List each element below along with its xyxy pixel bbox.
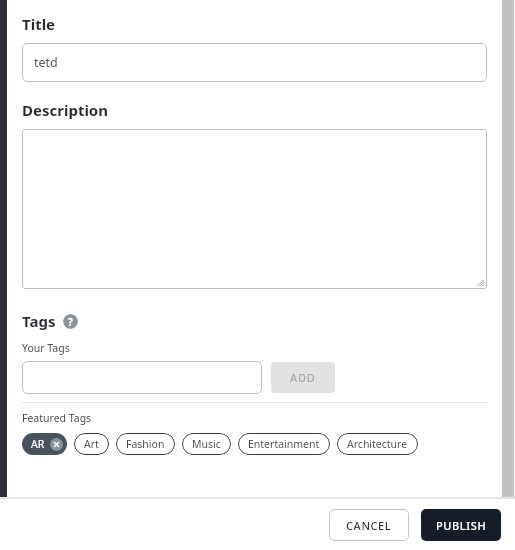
staticText: Music <box>192 437 221 451</box>
staticText: Fashion <box>126 437 165 451</box>
button[interactable]: CANCEL <box>329 509 409 541</box>
staticText: Description <box>22 100 108 120</box>
button[interactable]: tetd <box>22 43 487 82</box>
button[interactable]: Entertainment <box>238 433 330 455</box>
staticText: Architecture <box>347 437 408 451</box>
staticText: AR <box>31 437 45 451</box>
staticText: ADD <box>290 370 316 385</box>
staticText: ? <box>68 315 73 329</box>
button[interactable]: AR <box>22 433 67 455</box>
button[interactable]: Help about tags <box>63 314 78 329</box>
button[interactable]: Fashion <box>116 433 175 455</box>
staticText: Featured Tags <box>22 411 92 425</box>
staticText: CANCEL <box>346 518 392 533</box>
button[interactable] <box>22 361 262 394</box>
staticText: Your Tags <box>22 341 70 355</box>
other: Remove tag AR <box>50 438 63 451</box>
button[interactable] <box>22 129 487 289</box>
button[interactable]: Art <box>74 433 109 455</box>
staticText: Tags <box>22 311 56 331</box>
button[interactable]: Music <box>182 433 231 455</box>
button[interactable]: ADD <box>271 362 335 393</box>
staticText: Entertainment <box>248 437 320 451</box>
staticText: Art <box>84 437 99 451</box>
staticText: PUBLISH <box>436 518 487 533</box>
staticText: Title <box>22 14 56 34</box>
button[interactable]: Architecture <box>337 433 418 455</box>
staticText: tetd <box>34 54 58 71</box>
button[interactable]: PUBLISH <box>421 509 501 541</box>
